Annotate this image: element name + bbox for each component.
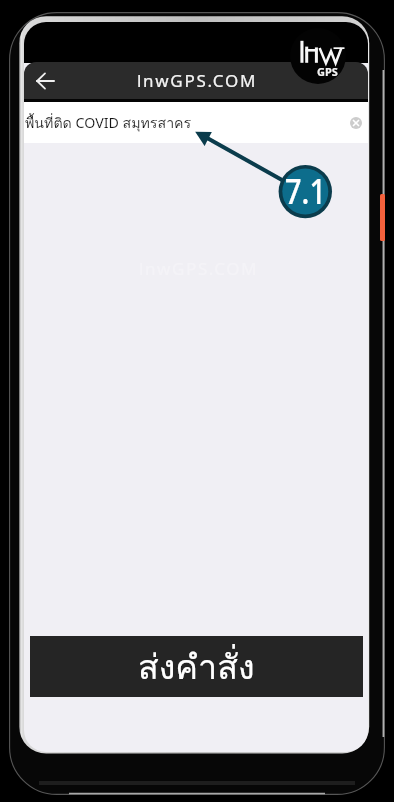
staticText: lnwGPS.COM bbox=[137, 69, 258, 92]
button[interactable]: Back bbox=[27, 62, 63, 99]
staticText: GPS bbox=[317, 64, 338, 79]
button[interactable]: ส่งคำสั่ง bbox=[30, 636, 363, 697]
staticText: 7.1 bbox=[285, 168, 326, 214]
button[interactable]: พื้นที่ติด COVID สมุทรสาคร bbox=[24, 102, 368, 143]
button[interactable]: Clear text bbox=[346, 113, 366, 133]
button[interactable]: Step 7.1 bbox=[279, 165, 332, 218]
staticText: พื้นที่ติด COVID สมุทรสาคร bbox=[25, 112, 192, 135]
staticText: ส่งคำสั่ง bbox=[138, 640, 255, 694]
